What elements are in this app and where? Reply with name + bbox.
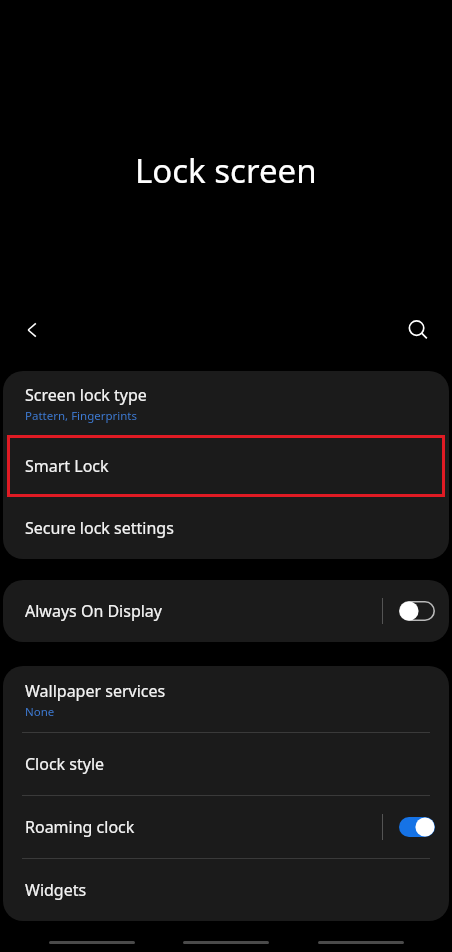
staticText: Wallpaper services [25,680,166,702]
button[interactable]: Smart Lock [3,435,449,497]
button[interactable]: Roaming clock [3,796,449,858]
staticText: Lock screen [135,148,317,193]
staticText: Pattern, Fingerprints [25,408,138,424]
staticText: Screen lock type [25,384,147,406]
button[interactable]: Navigation [318,941,404,944]
staticText: None [25,704,55,720]
staticText: Clock style [25,753,105,775]
button[interactable]: Navigation [183,941,269,944]
button[interactable]: Always On Display off [399,601,435,621]
button[interactable]: Always On Display [3,580,449,642]
button[interactable]: Navigation [49,941,135,944]
button[interactable]: Secure lock settings [3,497,449,559]
staticText: Secure lock settings [25,517,174,539]
staticText: Always On Display [25,600,163,622]
button[interactable]: Clock style [3,733,449,795]
staticText: Smart Lock [25,455,109,477]
button[interactable]: Back [10,308,54,352]
button[interactable]: Roaming clock on [399,817,435,837]
button[interactable]: Wallpaper services [3,666,449,732]
staticText: Widgets [25,879,87,901]
staticText: Roaming clock [25,816,135,838]
button[interactable]: Search [396,308,440,352]
button[interactable]: Screen lock type [3,371,449,435]
button[interactable]: Widgets [3,859,449,921]
